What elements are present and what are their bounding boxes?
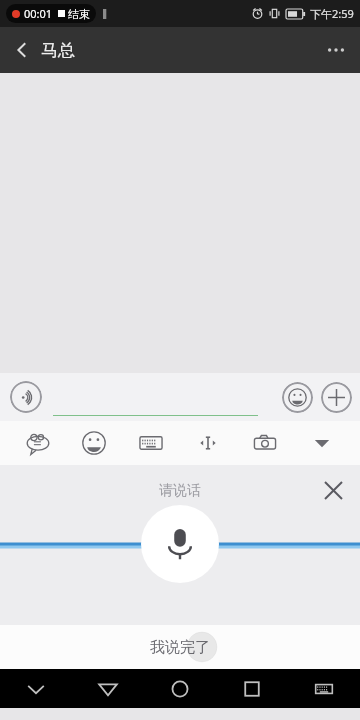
button[interactable] [53, 382, 258, 416]
staticText: 马总 [41, 40, 75, 61]
staticText: 我说完了 [150, 638, 210, 657]
button[interactable]: Keyboard [122, 421, 179, 465]
button[interactable]: Emoji [282, 382, 313, 413]
button[interactable]: Cloud voice [10, 421, 66, 465]
staticText: 结束 [68, 7, 90, 21]
button[interactable]: Recents [216, 669, 288, 708]
staticText: 下午2:59 [310, 6, 354, 21]
button[interactable]: Voice input [10, 381, 42, 413]
button[interactable]: Cursor [179, 421, 236, 465]
button[interactable]: Microphone [141, 505, 219, 583]
button[interactable]: Back [72, 669, 144, 708]
button[interactable]: Emoji [66, 421, 122, 465]
button[interactable]: More options [312, 27, 360, 73]
button[interactable]: Add attachment [321, 382, 352, 413]
staticText: 请说话 [159, 482, 201, 500]
button[interactable]: Collapse [293, 421, 350, 465]
button[interactable]: Recording 00:01 [12, 6, 90, 21]
button[interactable]: 我说完了 [0, 625, 360, 669]
button[interactable]: Camera [236, 421, 293, 465]
button[interactable]: Keyboard [288, 669, 360, 708]
button[interactable]: Back [0, 28, 44, 72]
button[interactable]: Close voice input [314, 471, 352, 509]
staticText: 00:01 [24, 6, 53, 21]
button[interactable]: Hide [0, 669, 72, 708]
button[interactable]: Home [144, 669, 216, 708]
